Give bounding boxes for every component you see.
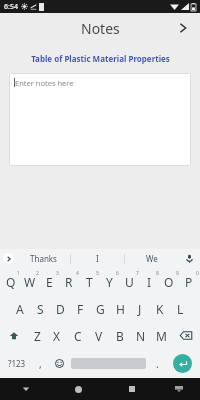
button[interactable]: D [50, 295, 70, 322]
staticText: T [86, 274, 93, 290]
staticText: S [37, 301, 44, 317]
button[interactable]: Enter notes here [9, 73, 191, 166]
button[interactable]: . [148, 349, 167, 378]
button[interactable]: R [59, 268, 79, 295]
staticText: 6:54 [4, 2, 18, 12]
staticText: Enter notes here [15, 78, 74, 88]
staticText: . [156, 357, 159, 371]
staticText: O [164, 274, 174, 290]
button[interactable]: W [20, 268, 39, 295]
button[interactable]: V [88, 322, 109, 349]
staticText: 8 [156, 270, 159, 277]
staticText: Table of Plastic Material Properties [31, 53, 170, 64]
button[interactable]: O [159, 268, 179, 295]
button[interactable]: , [31, 349, 50, 378]
staticText: L [177, 301, 184, 317]
button[interactable]: Expand suggestions [0, 249, 16, 268]
button[interactable]: U [119, 268, 139, 295]
staticText: D [56, 301, 65, 317]
button[interactable]: Voice input [178, 249, 200, 268]
staticText: 6 [116, 270, 119, 277]
staticText: We [146, 253, 158, 264]
button[interactable]: C [67, 322, 88, 349]
button[interactable]: Next [172, 17, 194, 39]
button[interactable]: A [10, 295, 30, 322]
button[interactable]: E [39, 268, 59, 295]
staticText: A [16, 301, 24, 317]
staticText: I [96, 253, 99, 264]
button[interactable]: P [179, 268, 199, 295]
staticText: Q [6, 274, 16, 290]
button[interactable]: Thanks [16, 249, 70, 268]
button[interactable]: Z [27, 322, 47, 349]
button[interactable]: K [150, 295, 170, 322]
button[interactable]: Shift [1, 322, 27, 349]
button[interactable]: T [79, 268, 99, 295]
staticText: H [116, 301, 125, 317]
staticText: Notes [81, 19, 120, 38]
staticText: 0 [196, 270, 199, 277]
staticText: 9 [176, 270, 179, 277]
button[interactable]: I [71, 249, 124, 268]
button[interactable]: B [109, 322, 130, 349]
button[interactable]: S [30, 295, 50, 322]
button[interactable]: Q [1, 268, 20, 295]
staticText: E [46, 274, 53, 290]
staticText: Y [106, 274, 113, 290]
button[interactable]: ?123 [3, 349, 31, 378]
staticText: ?123 [8, 358, 26, 369]
button[interactable]: L [170, 295, 190, 322]
staticText: G [96, 301, 105, 317]
button[interactable]: Emoji [50, 349, 69, 378]
button[interactable]: Y [99, 268, 119, 295]
staticText: 3 [56, 270, 59, 277]
staticText: 4 [76, 270, 79, 277]
staticText: 2 [36, 270, 39, 277]
button[interactable]: Home [52, 378, 105, 400]
staticText: V [95, 328, 103, 344]
button[interactable]: H [110, 295, 130, 322]
staticText: N [136, 328, 146, 344]
button[interactable]: M [151, 322, 172, 349]
staticText: 1 [17, 270, 20, 277]
staticText: X [53, 328, 61, 344]
staticText: M [156, 328, 167, 344]
staticText: I [147, 274, 152, 290]
staticText: 7 [136, 270, 139, 277]
staticText: W [24, 274, 36, 290]
staticText: 5 [96, 270, 99, 277]
staticText: K [156, 301, 164, 317]
staticText: U [125, 274, 134, 290]
staticText: J [138, 301, 142, 317]
staticText: R [65, 274, 73, 290]
staticText: Thanks [30, 253, 57, 264]
button[interactable]: I [139, 268, 159, 295]
staticText: F [77, 301, 84, 317]
button[interactable]: G [90, 295, 110, 322]
button[interactable]: X [47, 322, 67, 349]
button[interactable]: Back [0, 378, 52, 400]
staticText: , [39, 357, 42, 371]
staticText: P [185, 274, 193, 290]
button[interactable]: Hide keyboard [158, 378, 200, 400]
button[interactable]: Recents [105, 378, 158, 400]
button[interactable]: N [130, 322, 151, 349]
button[interactable]: We [125, 249, 178, 268]
staticText: Z [34, 328, 41, 344]
button[interactable]: J [130, 295, 150, 322]
button[interactable]: F [70, 295, 90, 322]
staticText: B [116, 328, 124, 344]
button[interactable]: Backspace [172, 322, 199, 349]
button[interactable]: Enter [167, 349, 197, 378]
staticText: C [74, 328, 82, 344]
